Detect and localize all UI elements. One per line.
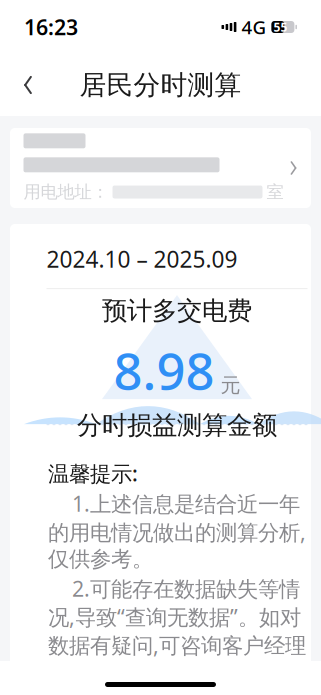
staticText: 用电地址： xyxy=(23,181,108,203)
staticText: 4G xyxy=(241,15,266,39)
staticText: 居民分时测算 xyxy=(79,69,241,101)
staticText: 室 xyxy=(266,181,283,203)
staticText: 2024.10 – 2025.09 xyxy=(46,244,237,274)
staticText: 1.上述信息是结合近一年的用电情况做出的测算分析,仅供参考。 xyxy=(48,489,306,572)
button[interactable]: Back xyxy=(6,63,50,107)
button[interactable]: 用电户信息 xyxy=(0,128,321,208)
staticText: 预计多交电费 xyxy=(102,295,252,326)
staticText: 温馨提示: xyxy=(48,459,138,487)
staticText: 16:23 xyxy=(24,13,78,41)
staticText: 分时损益测算金额 xyxy=(77,410,277,441)
staticText: 元 xyxy=(220,373,240,398)
staticText: 8.98 xyxy=(113,336,214,404)
staticText: 55 xyxy=(273,19,287,35)
staticText: 2.可能存在数据缺失等情况,导致“查询无数据”。如对数据有疑问,可咨询客户经理或… xyxy=(48,574,306,685)
